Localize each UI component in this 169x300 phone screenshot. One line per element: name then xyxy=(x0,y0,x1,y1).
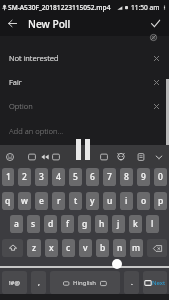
button[interactable]: Not interested xyxy=(0,46,169,69)
button[interactable]: u xyxy=(103,192,116,210)
staticText: v xyxy=(83,242,88,254)
button[interactable]: Stickers xyxy=(24,145,39,168)
button[interactable]: Create poll xyxy=(144,13,166,34)
staticText: SM-A530F_20181223115052.mp4 xyxy=(8,3,111,12)
staticText: n xyxy=(117,242,123,254)
button[interactable]: Option xyxy=(0,94,169,117)
staticText: p xyxy=(158,195,164,207)
button[interactable]: o xyxy=(137,192,150,210)
button[interactable]: Clipboard xyxy=(133,145,148,168)
button[interactable]: s xyxy=(27,215,40,233)
button[interactable]: Shift xyxy=(2,239,23,257)
staticText: j xyxy=(117,218,120,230)
button[interactable]: Add an option... xyxy=(0,119,169,142)
staticText: Option xyxy=(9,101,33,111)
button[interactable]: 8 xyxy=(120,168,133,186)
button[interactable]: n xyxy=(113,239,126,257)
staticText: 9 xyxy=(141,171,146,183)
staticText: b xyxy=(100,242,106,254)
staticText: r xyxy=(57,195,61,207)
staticText: l xyxy=(151,218,154,230)
button[interactable]: 2 xyxy=(18,168,31,186)
button[interactable]: Voice input xyxy=(48,145,63,168)
button[interactable]: Bitmoji xyxy=(113,145,128,168)
button[interactable]: h xyxy=(95,215,108,233)
button[interactable]: More options xyxy=(151,145,166,168)
staticText: q xyxy=(5,195,11,207)
button[interactable]: l xyxy=(146,215,159,233)
button[interactable]: 1 xyxy=(2,168,14,186)
button[interactable]: Anonymous voting xyxy=(145,29,162,46)
button[interactable]: x xyxy=(45,239,58,257)
button[interactable]: k xyxy=(129,215,142,233)
button[interactable]: . xyxy=(124,271,139,294)
button[interactable]: Space xyxy=(50,271,120,294)
button[interactable]: 6 xyxy=(86,168,99,186)
staticText: c xyxy=(66,242,71,254)
button[interactable]: r xyxy=(52,192,65,210)
staticText: e xyxy=(39,195,44,207)
button[interactable]: j xyxy=(112,215,125,233)
staticText: u xyxy=(107,195,113,207)
button[interactable]: q xyxy=(2,192,14,210)
button[interactable]: Search xyxy=(96,145,111,168)
button[interactable]: Navigate up xyxy=(0,13,24,34)
button[interactable]: Emoji xyxy=(2,145,17,168)
staticText: 7 xyxy=(107,171,112,183)
button[interactable]: g xyxy=(78,215,91,233)
staticText: , xyxy=(38,278,40,288)
staticText: New Poll xyxy=(28,17,71,31)
button[interactable]: 7 xyxy=(103,168,116,186)
staticText: Fair xyxy=(9,77,22,87)
button[interactable]: m xyxy=(130,239,143,257)
button[interactable]: z xyxy=(27,239,41,257)
staticText: Add an option... xyxy=(9,126,64,136)
button[interactable]: Delete xyxy=(147,239,167,257)
staticText: t xyxy=(74,195,78,207)
button[interactable]: w xyxy=(18,192,31,210)
button[interactable]: c xyxy=(62,239,75,257)
button[interactable]: Remove option xyxy=(148,74,164,90)
button[interactable]: Fair xyxy=(0,70,169,93)
staticText: g xyxy=(82,218,88,230)
staticText: Next xyxy=(152,279,166,287)
button[interactable]: d xyxy=(44,215,57,233)
button[interactable]: a xyxy=(10,215,23,233)
staticText: a xyxy=(14,218,19,230)
button[interactable]: 5 xyxy=(69,168,82,186)
button[interactable]: , xyxy=(31,271,46,294)
staticText: w xyxy=(21,195,28,207)
button[interactable]: Remove option xyxy=(148,98,164,114)
staticText: x xyxy=(49,242,54,254)
button[interactable]: 3 xyxy=(35,168,48,186)
button[interactable]: GIF xyxy=(37,145,52,168)
button[interactable]: Remove option xyxy=(148,50,164,66)
button[interactable]: y xyxy=(86,192,99,210)
staticText: f xyxy=(66,218,70,230)
button[interactable]: e xyxy=(35,192,48,210)
button[interactable]: f xyxy=(61,215,74,233)
staticText: s xyxy=(31,218,36,230)
staticText: h xyxy=(99,218,105,230)
staticText: 5 xyxy=(73,171,78,183)
staticText: . xyxy=(131,278,133,288)
staticText: 4 xyxy=(56,171,61,183)
staticText: 8 xyxy=(124,171,129,183)
button[interactable]: Next xyxy=(143,271,167,294)
button[interactable]: i xyxy=(120,192,133,210)
staticText: m xyxy=(132,242,141,254)
staticText: 11:50 am xyxy=(131,3,160,12)
staticText: i xyxy=(125,195,128,207)
button[interactable]: t xyxy=(69,192,82,210)
button[interactable]: b xyxy=(96,239,109,257)
button[interactable]: 0 xyxy=(154,168,167,186)
button[interactable]: Symbols xyxy=(2,271,27,294)
button[interactable]: v xyxy=(79,239,92,257)
button[interactable]: 4 xyxy=(52,168,65,186)
button[interactable]: p xyxy=(154,192,167,210)
staticText: 0 xyxy=(158,171,163,183)
staticText: 3 xyxy=(39,171,44,183)
staticText: Not interested xyxy=(9,53,59,63)
staticText: z xyxy=(32,242,37,254)
button[interactable]: 9 xyxy=(137,168,150,186)
